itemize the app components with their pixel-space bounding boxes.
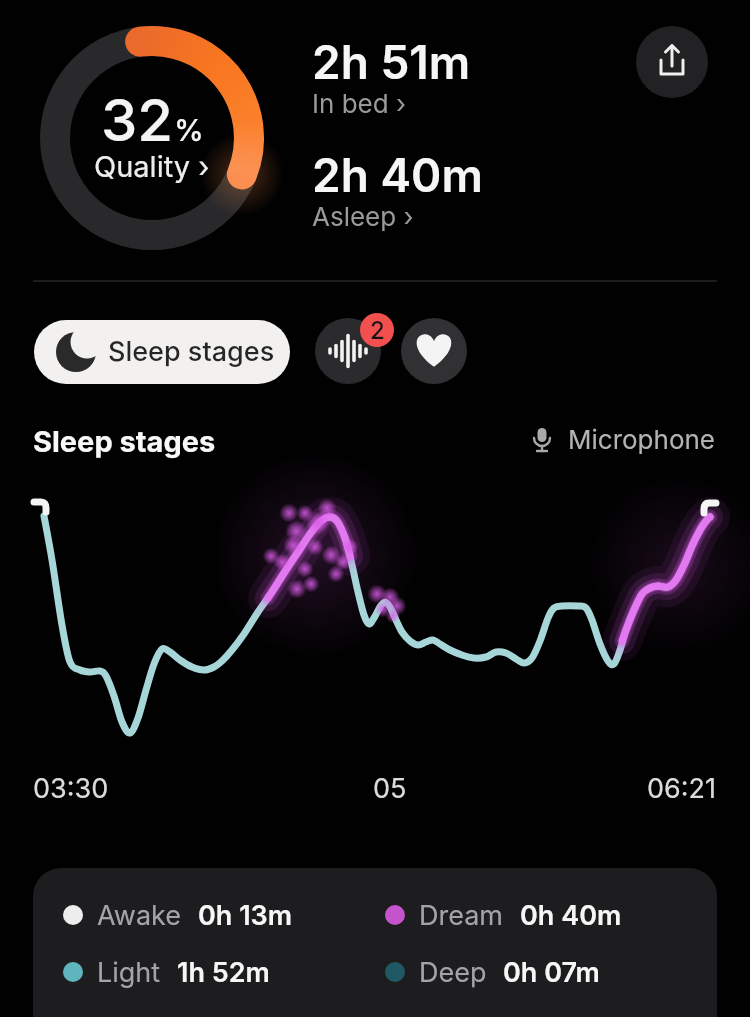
button[interactable]: Sleep stages xyxy=(34,320,290,384)
button[interactable]: Quality › xyxy=(52,148,252,184)
staticText: 0h 13m xyxy=(198,899,293,932)
staticText: Awake xyxy=(97,899,182,932)
staticText: 0h 07m xyxy=(503,956,600,989)
staticText: 05 xyxy=(373,772,407,805)
staticText: 2h 51m xyxy=(312,34,471,90)
staticText: 06:21 xyxy=(647,772,717,805)
staticText: 2 xyxy=(370,316,385,345)
staticText: Quality › xyxy=(94,149,210,184)
staticText: Microphone xyxy=(568,424,715,455)
button[interactable]: Deep xyxy=(385,952,600,992)
button[interactable] xyxy=(315,318,381,384)
staticText: 32 xyxy=(101,85,174,155)
staticText: Light xyxy=(97,956,161,989)
staticText: 03:30 xyxy=(33,772,109,805)
staticText: Sleep stages xyxy=(108,335,275,368)
button[interactable]: In bed › xyxy=(312,88,406,119)
button[interactable]: Microphone xyxy=(528,424,715,455)
staticText: 0h 40m xyxy=(520,899,622,932)
button[interactable] xyxy=(636,26,708,98)
button[interactable]: Asleep › xyxy=(312,201,414,232)
staticText: Sleep stages xyxy=(33,424,216,459)
staticText: 1h 52m xyxy=(177,956,270,989)
staticText: 2h 40m xyxy=(312,147,483,203)
staticText: Dream xyxy=(419,899,504,932)
staticText: % xyxy=(174,112,204,148)
button[interactable]: Dream xyxy=(385,895,622,935)
button[interactable]: Awake xyxy=(63,895,293,935)
button[interactable] xyxy=(401,318,467,384)
staticText: Deep xyxy=(419,956,487,989)
button[interactable]: Light xyxy=(63,952,270,992)
